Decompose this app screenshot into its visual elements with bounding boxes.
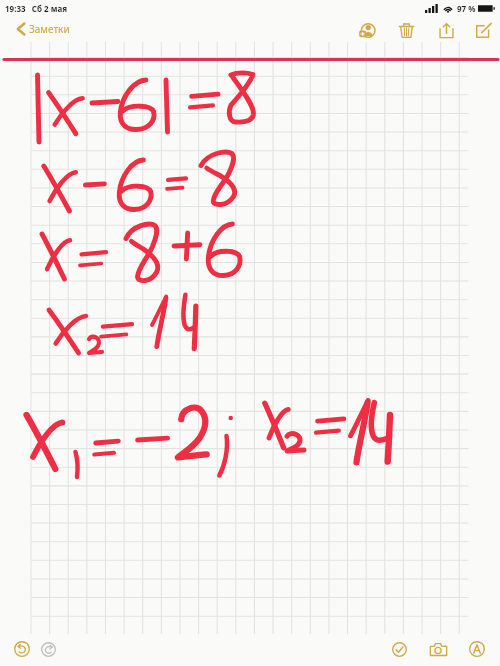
button[interactable]: Camera bbox=[424, 635, 452, 663]
staticText: 97 % bbox=[457, 3, 476, 14]
button[interactable]: Done bbox=[385, 635, 413, 663]
button[interactable]: Markup bbox=[463, 635, 491, 663]
button[interactable]: Add people bbox=[346, 17, 386, 43]
button[interactable]: Redo bbox=[34, 635, 62, 663]
button[interactable]: Заметки bbox=[17, 22, 70, 36]
button[interactable]: Share bbox=[426, 17, 466, 43]
staticText: Заметки bbox=[29, 22, 70, 36]
staticText: 19:33 Сб 2 мая bbox=[5, 3, 67, 14]
button[interactable]: Undo bbox=[8, 635, 36, 663]
button[interactable]: Compose bbox=[466, 17, 500, 43]
button[interactable]: Delete bbox=[386, 17, 426, 43]
